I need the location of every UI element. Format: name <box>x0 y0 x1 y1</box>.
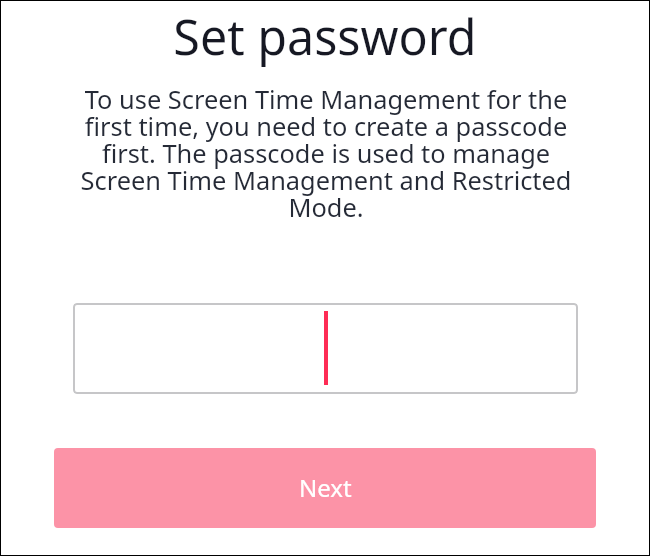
staticText: To use Screen Time Management for the fi… <box>76 82 576 225</box>
button[interactable]: Passcode entry field <box>73 303 578 394</box>
staticText: Next <box>299 471 352 504</box>
staticText: Set password <box>0 3 650 69</box>
button[interactable]: Next <box>54 448 596 528</box>
